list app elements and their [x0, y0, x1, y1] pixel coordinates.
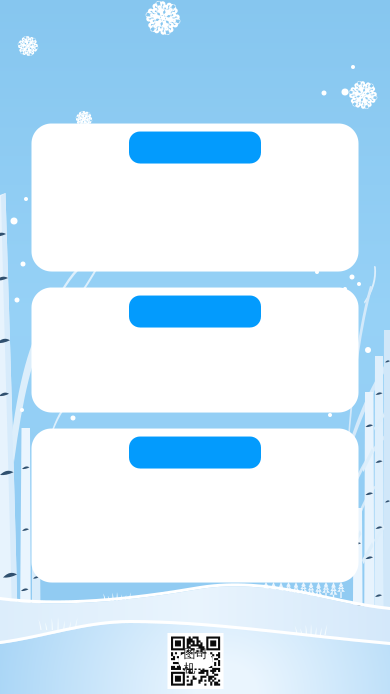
- button[interactable]: Content card: [31, 123, 358, 271]
- staticText: 图司机: [183, 646, 207, 676]
- button[interactable]: Content card: [31, 287, 358, 412]
- button[interactable]: Content card: [31, 428, 358, 582]
